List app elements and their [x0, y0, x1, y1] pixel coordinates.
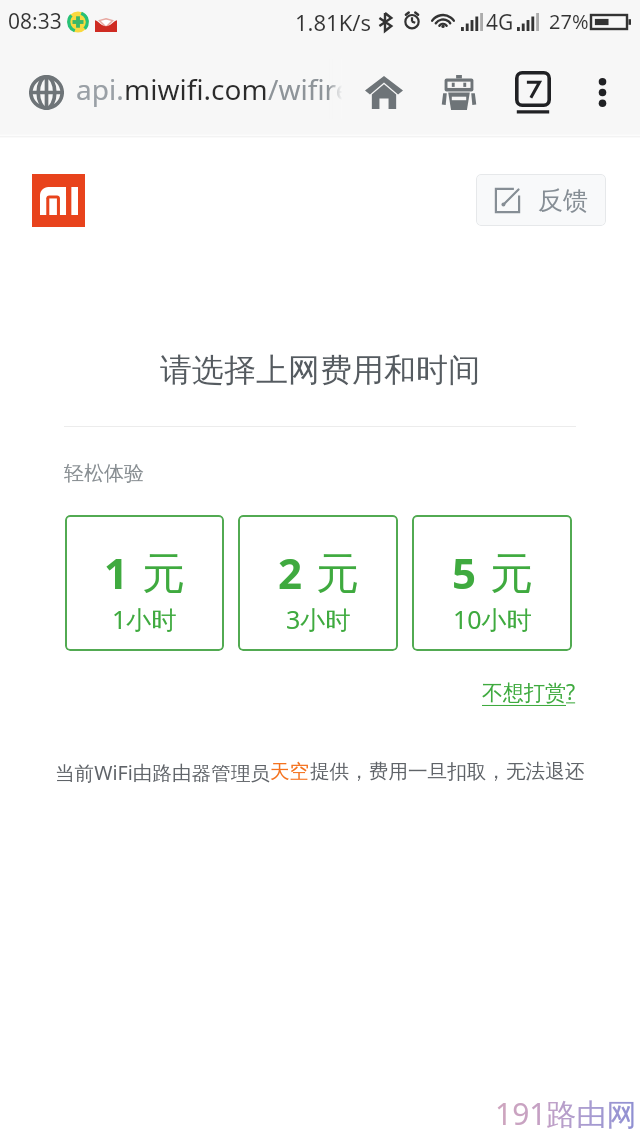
staticText: 10小时: [453, 602, 532, 636]
staticText: /wifire.cgi: [268, 70, 348, 108]
button[interactable]: More options: [578, 68, 627, 117]
staticText: 191路由网: [495, 1093, 637, 1134]
staticText: 天空: [270, 759, 310, 784]
staticText: 1小时: [112, 602, 177, 636]
staticText: api.: [76, 70, 124, 108]
button[interactable]: Tabs: 7 open: [504, 62, 561, 122]
button[interactable]: Home: [355, 64, 412, 121]
button[interactable]: 反馈: [476, 174, 606, 226]
staticText: 轻松体验: [64, 461, 144, 486]
staticText: 反馈: [538, 185, 588, 216]
staticText: 1: [104, 544, 129, 601]
button[interactable]: Mi logo: [32, 174, 85, 227]
button[interactable]: 2: [238, 515, 398, 651]
staticText: 请选择上网费用和时间: [0, 350, 640, 390]
staticText: 1.81K/s: [295, 7, 371, 37]
staticText: 2: [278, 544, 303, 601]
staticText: 提供，费用一旦扣取，无法退还: [310, 759, 585, 784]
button[interactable]: Site information: [18, 64, 75, 121]
staticText: miwifi.com: [124, 70, 268, 108]
staticText: 27%: [549, 8, 589, 35]
button[interactable]: 不想打赏?: [482, 678, 576, 707]
staticText: 3小时: [286, 602, 351, 636]
staticText: 元: [142, 547, 185, 601]
button[interactable]: Reading mode: [430, 64, 487, 121]
staticText: 当前WiFi由路由器管理员: [55, 759, 270, 786]
staticText: 08:33: [8, 7, 62, 36]
button[interactable]: 5: [412, 515, 572, 651]
button[interactable]: 1: [65, 515, 224, 651]
staticText: 元: [490, 547, 533, 601]
staticText: 元: [316, 547, 359, 601]
staticText: 5: [452, 544, 477, 601]
staticText: 4G: [486, 8, 514, 37]
